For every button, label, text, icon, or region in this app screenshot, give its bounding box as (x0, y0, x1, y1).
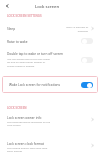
staticText: Raise to wake (7, 40, 28, 44)
staticText: This message will be displayed on the Lo… (7, 120, 53, 127)
staticText: Wake Lock screen for notifications (9, 83, 61, 87)
staticText: Sleep (7, 27, 16, 31)
button[interactable]: Sleep (0, 23, 100, 34)
staticText: Lock screen clock format (7, 142, 82, 146)
staticText: LOCK SCREEN (7, 106, 27, 110)
button[interactable]: Lock screen owner info (0, 114, 100, 131)
button[interactable]: Raise to wake (0, 36, 100, 47)
staticText: Double tap to wake or turn off screen (7, 52, 82, 56)
button[interactable]: Back (2, 1, 12, 11)
staticText: After 10 minutes of inactivity (64, 25, 88, 33)
button[interactable]: Switch off (81, 38, 93, 44)
staticText: Lock screen (35, 3, 60, 9)
button[interactable]: Switch off (81, 57, 93, 63)
button[interactable]: Switch on (81, 82, 93, 88)
button[interactable]: Double tap to wake or turn off screen (0, 50, 100, 71)
staticText: This setting doesn't work with third par… (7, 146, 53, 153)
button[interactable]: Lock screen clock format (0, 140, 100, 154)
staticText: Lock screen owner info (7, 116, 82, 120)
button[interactable]: Wake Lock screen for notifications (2, 76, 98, 93)
staticText: LOCK SCREEN SETTINGS (7, 14, 42, 18)
staticText: You can double tap to turn the screen of… (7, 57, 53, 68)
